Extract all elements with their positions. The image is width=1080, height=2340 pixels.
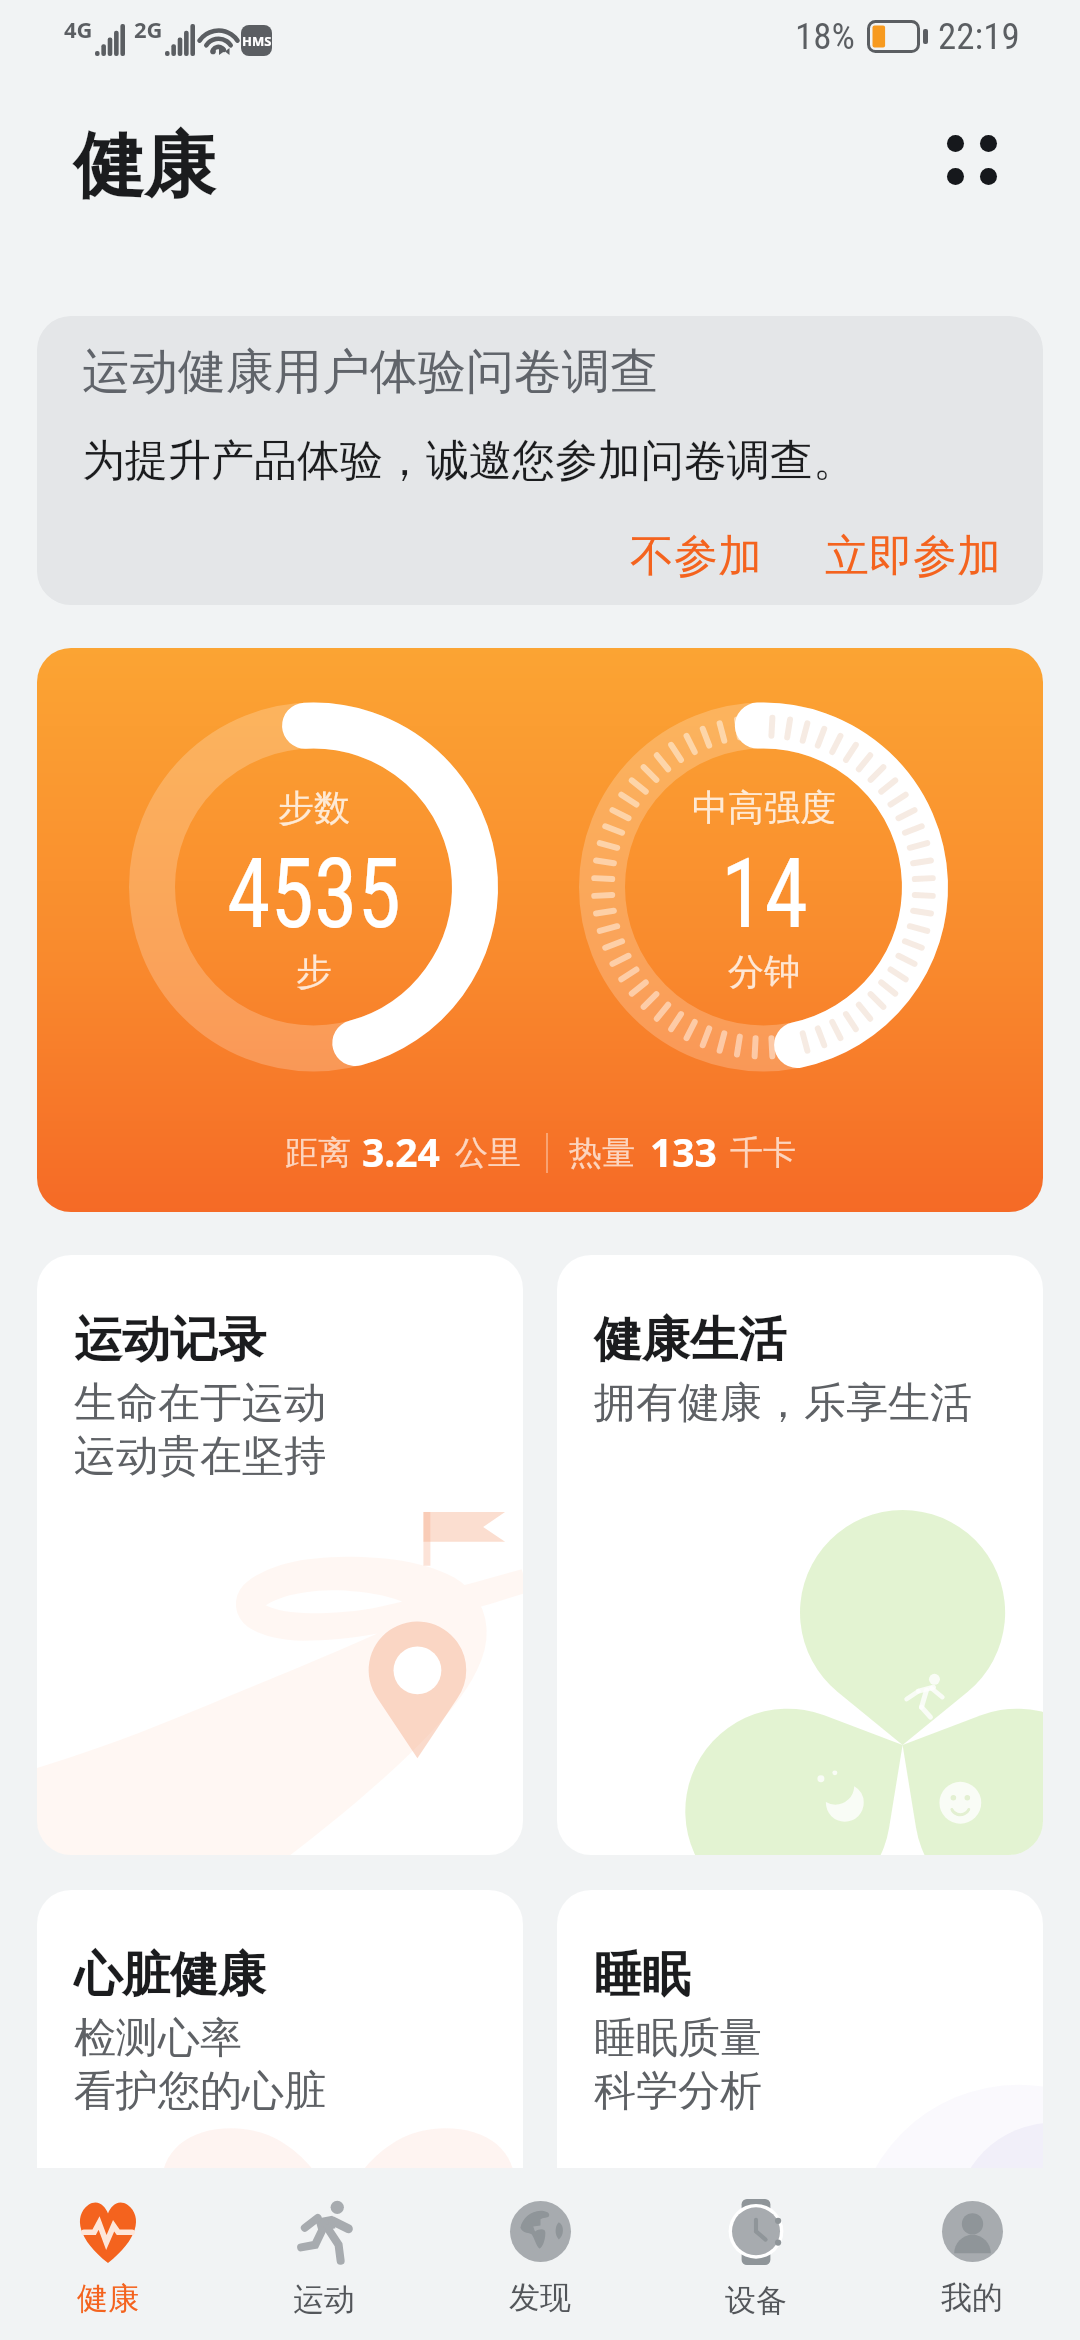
staticText: 运动健康用户体验问卷调查 <box>82 342 658 402</box>
button[interactable]: 健康生活 <box>557 1255 1043 1855</box>
staticText: 热量 <box>569 1132 635 1174</box>
staticText: 睡眠 <box>594 1945 690 2005</box>
staticText: 18% <box>795 15 855 58</box>
staticText: 14 <box>721 838 808 951</box>
staticText: 步数 <box>278 785 350 830</box>
staticText: 2G <box>134 14 163 44</box>
button[interactable]: 健康 <box>0 2168 216 2340</box>
staticText: 距离 <box>285 1132 351 1174</box>
button[interactable]: 立即参加 <box>817 521 1009 592</box>
button[interactable]: More options <box>924 112 1020 208</box>
staticText: 健康 <box>77 2279 139 2318</box>
staticText: 中高强度 <box>692 785 836 830</box>
staticText: 立即参加 <box>825 529 1001 584</box>
staticText: 我的 <box>941 2278 1003 2317</box>
staticText: 分钟 <box>728 949 800 994</box>
staticText: 步 <box>296 949 332 994</box>
button[interactable]: 不参加 <box>622 521 770 592</box>
staticText: 看护您的心脏 <box>74 2065 326 2118</box>
button[interactable]: 步数 <box>37 648 1043 1212</box>
staticText: 设备 <box>725 2281 787 2320</box>
staticText: 发现 <box>509 2278 571 2317</box>
button[interactable]: 睡眠 <box>557 1890 1043 2310</box>
staticText: 运动记录 <box>74 1310 266 1370</box>
staticText: 4535 <box>227 838 401 951</box>
staticText: 133 <box>650 1125 717 1178</box>
button[interactable]: 我的 <box>864 2168 1080 2340</box>
staticText: 拥有健康，乐享生活 <box>594 1377 972 1430</box>
staticText: 公里 <box>455 1132 521 1174</box>
staticText: 健康生活 <box>594 1310 786 1370</box>
staticText: 千卡 <box>730 1132 796 1174</box>
button[interactable]: 心脏健康 <box>37 1890 523 2310</box>
staticText: 睡眠质量 <box>594 2012 762 2065</box>
button[interactable]: 设备 <box>648 2168 864 2340</box>
button[interactable]: 运动 <box>216 2168 432 2340</box>
staticText: 不参加 <box>630 529 762 584</box>
staticText: 运动 <box>293 2280 355 2319</box>
staticText: 22:19 <box>938 15 1020 58</box>
button[interactable]: 发现 <box>432 2168 648 2340</box>
button[interactable]: 运动健康用户体验问卷调查 <box>37 316 1043 605</box>
staticText: 健康 <box>73 122 215 211</box>
staticText: HMS <box>242 32 272 50</box>
staticText: 运动贵在坚持 <box>74 1430 326 1483</box>
staticText: 3.24 <box>362 1125 440 1178</box>
staticText: 科学分析 <box>594 2065 762 2118</box>
staticText: 心脏健康 <box>74 1945 266 2005</box>
staticText: 4G <box>64 14 93 44</box>
staticText: 生命在于运动 <box>74 1377 326 1430</box>
staticText: 为提升产品体验，诚邀您参加问卷调查。 <box>82 434 856 488</box>
staticText: 检测心率 <box>74 2012 242 2065</box>
button[interactable]: 运动记录 <box>37 1255 523 1855</box>
